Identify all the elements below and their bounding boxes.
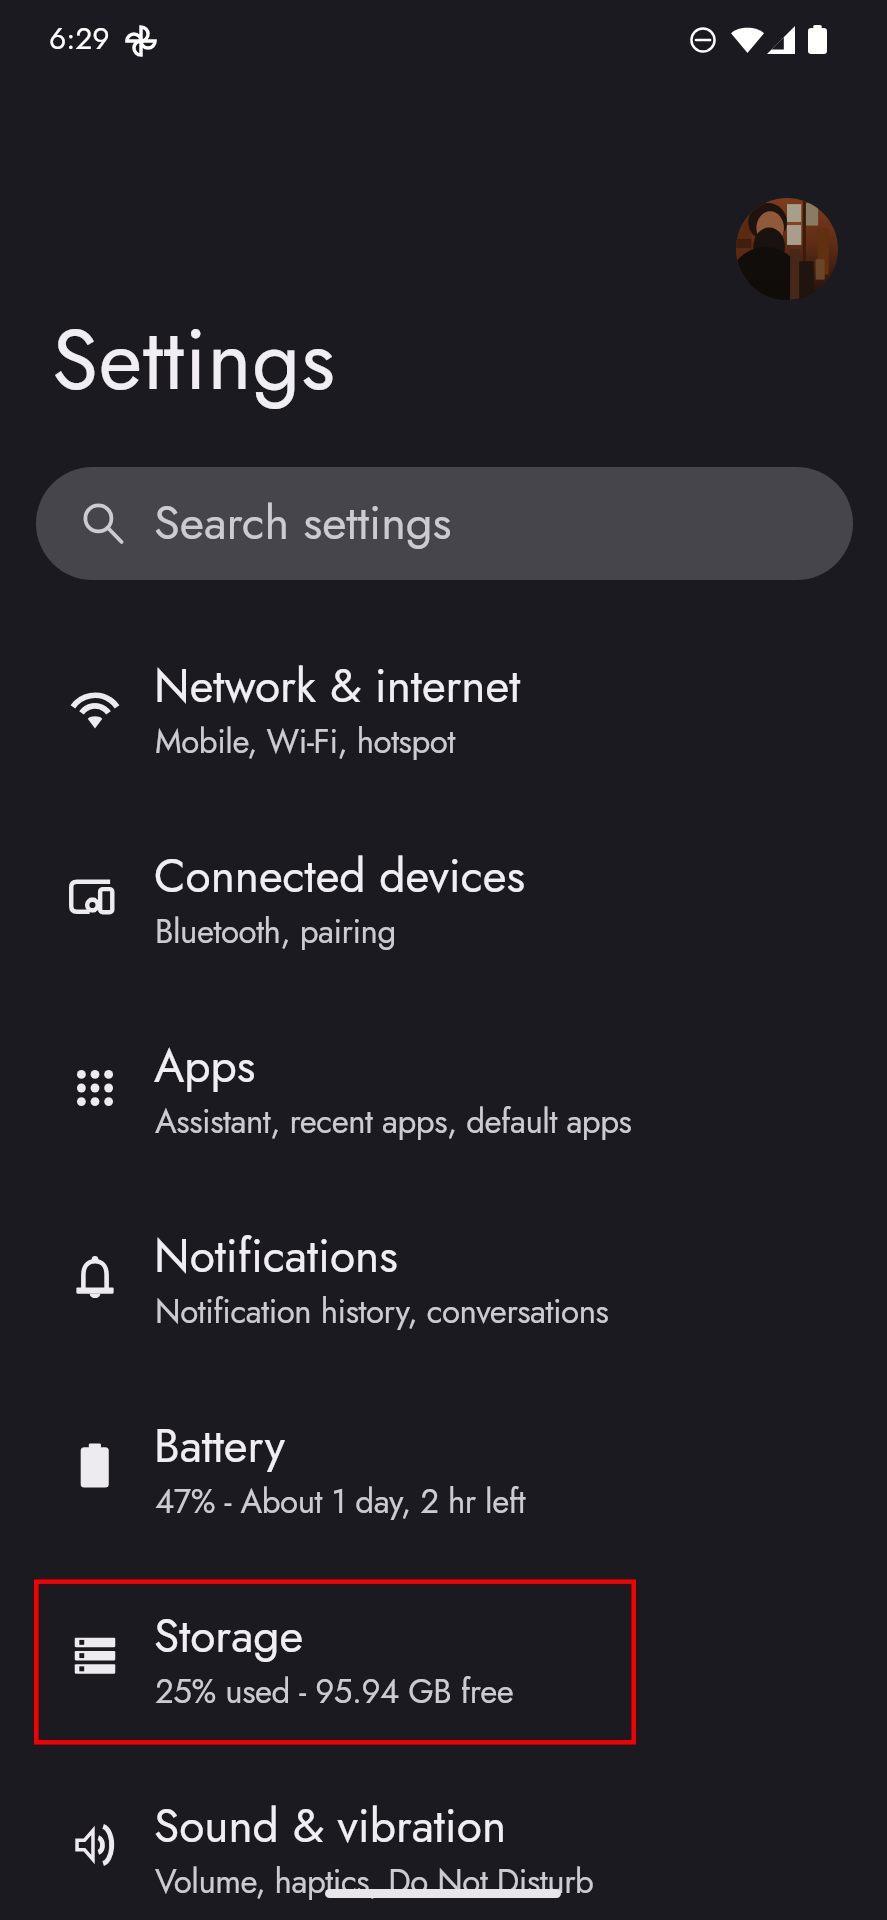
button[interactable]: Apps — [0, 1001, 887, 1191]
staticText: Volume, haptics, Do Not Disturb — [155, 1858, 594, 1906]
other: Wi-Fi signal full — [731, 26, 764, 53]
other: Pinwheel status icon — [126, 26, 156, 56]
staticText: Settings — [52, 299, 336, 420]
staticText: Search settings — [154, 489, 452, 557]
staticText: Storage — [154, 1603, 304, 1669]
button[interactable]: Connected devices — [0, 811, 887, 1001]
button[interactable]: Account avatar — [736, 198, 838, 300]
staticText: Network & internet — [154, 653, 521, 719]
button[interactable]: Storage — [0, 1571, 887, 1761]
staticText: Battery — [154, 1413, 285, 1479]
other: Battery — [808, 25, 827, 54]
staticText: Notifications — [154, 1223, 398, 1289]
button[interactable]: Sound & vibration — [0, 1761, 887, 1920]
button[interactable]: Search settings — [36, 467, 853, 580]
other: Mobile signal — [767, 26, 795, 54]
staticText: 47% - About 1 day, 2 hr left — [155, 1478, 526, 1526]
staticText: Bluetooth, pairing — [155, 908, 396, 956]
staticText: Assistant, recent apps, default apps — [155, 1098, 632, 1146]
other: Do Not Disturb on — [690, 27, 716, 53]
staticText: Notification history, conversations — [155, 1288, 609, 1336]
staticText: Mobile, Wi-Fi, hotspot — [155, 718, 455, 766]
button[interactable]: Network & internet — [0, 621, 887, 811]
staticText: 6:29 — [49, 17, 110, 60]
staticText: Apps — [154, 1033, 256, 1099]
staticText: Connected devices — [154, 843, 525, 909]
button[interactable]: Notifications — [0, 1191, 887, 1381]
staticText: 25% used - 95.94 GB free — [155, 1668, 514, 1716]
staticText: Sound & vibration — [154, 1793, 507, 1859]
button[interactable]: Battery — [0, 1381, 887, 1571]
